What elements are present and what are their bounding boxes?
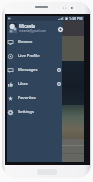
staticText: Micaela (19, 23, 36, 29)
button[interactable]: Messages (7, 63, 62, 77)
button[interactable]: Likes (7, 77, 62, 91)
button[interactable]: Live Profile (7, 49, 62, 63)
staticText: 1:30 PM (69, 16, 83, 21)
staticText: Likes (18, 81, 28, 87)
button[interactable]: Favorites (7, 91, 62, 105)
staticText: Live Profile (18, 53, 40, 59)
staticText: Browse (18, 39, 33, 45)
button[interactable]: Micaela (7, 21, 62, 35)
button[interactable]: Settings (7, 105, 62, 119)
button[interactable]: Settings (58, 27, 63, 32)
staticText: Messages (18, 67, 38, 73)
staticText: Settings (18, 109, 34, 115)
staticText: Favorites (18, 95, 36, 101)
button[interactable]: Browse (7, 35, 62, 49)
staticText: micaela@gmail.com (19, 29, 47, 33)
